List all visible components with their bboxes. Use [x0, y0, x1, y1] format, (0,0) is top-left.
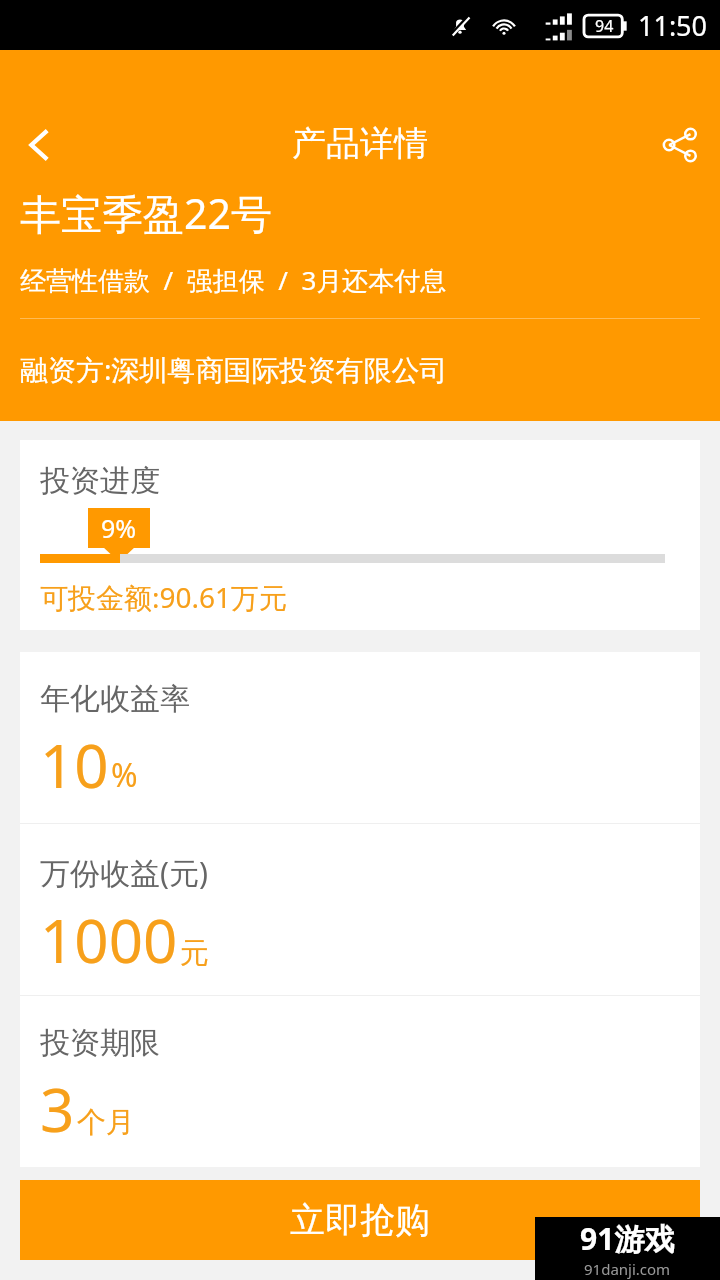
staticText: 元	[180, 935, 209, 972]
button[interactable]: 投资进度	[20, 440, 700, 630]
staticText: 1000	[40, 899, 178, 981]
staticText: 经营性借款 / 强担保 / 3月还本付息	[20, 262, 447, 298]
staticText: 立即抢购	[290, 1198, 430, 1242]
staticText: 94	[595, 15, 614, 37]
button[interactable]: 万份收益(元)	[20, 824, 700, 995]
staticText: 年化收益率	[40, 680, 190, 718]
button[interactable]: 立即抢购	[20, 1180, 700, 1260]
staticText: 产品详情	[0, 122, 720, 165]
staticText: 丰宝季盈22号	[20, 185, 272, 241]
staticText: 融资方:深圳粤商国际投资有限公司	[20, 350, 448, 388]
staticText: 可投金额:90.61万元	[40, 578, 288, 616]
button[interactable]: 投资期限	[20, 996, 700, 1167]
staticText: 投资期限	[40, 1024, 160, 1062]
staticText: 万份收益(元)	[40, 852, 208, 893]
button[interactable]: 年化收益率	[20, 652, 700, 823]
button[interactable]: Share	[640, 105, 720, 185]
staticText: 9%	[101, 511, 137, 545]
staticText: 个月	[77, 1104, 135, 1141]
staticText: 91游戏	[580, 1218, 675, 1259]
staticText: 3	[40, 1068, 75, 1150]
button[interactable]: Back	[0, 105, 80, 185]
staticText: 11:50	[638, 7, 708, 44]
staticText: 投资进度	[40, 462, 160, 500]
staticText: 91danji.com	[584, 1259, 671, 1279]
staticText: %	[111, 753, 138, 797]
staticText: 10	[40, 724, 109, 806]
